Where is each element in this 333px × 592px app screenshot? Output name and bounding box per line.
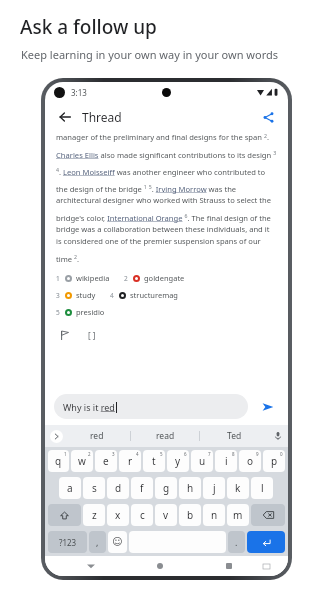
button[interactable]: z — [83, 504, 105, 526]
staticText: structuremag — [130, 290, 178, 300]
staticText: s — [92, 481, 97, 495]
button[interactable]: Home — [150, 556, 170, 576]
staticText: goldengate — [144, 273, 185, 283]
staticText: b — [187, 508, 194, 522]
staticText: 8 — [232, 451, 235, 457]
staticText: 2 — [88, 451, 91, 457]
staticText: t — [152, 454, 156, 468]
button[interactable]: 5 — [56, 307, 105, 317]
button[interactable]: n — [203, 504, 225, 526]
staticText: a — [67, 481, 73, 495]
button[interactable]: c — [131, 504, 153, 526]
staticText: 3 — [56, 291, 60, 300]
button[interactable]: More suggestions — [50, 430, 63, 443]
button[interactable]: q — [48, 450, 69, 472]
staticText: c — [140, 508, 145, 522]
staticText: 0 — [280, 451, 283, 457]
button[interactable]: red — [63, 425, 130, 447]
staticText: 5 — [160, 451, 163, 457]
staticText: f — [140, 481, 144, 495]
staticText: 4 — [110, 291, 114, 300]
staticText: i — [225, 454, 228, 468]
button[interactable]: Sources — [84, 327, 100, 343]
staticText: p — [271, 454, 278, 468]
staticText: Ask a follow up — [20, 14, 157, 40]
button[interactable]: ☺ — [108, 531, 127, 553]
staticText: 3 — [112, 451, 115, 457]
staticText: Why is it red — [63, 401, 115, 413]
button[interactable]: x — [107, 504, 129, 526]
button[interactable]: Back — [81, 556, 101, 576]
staticText: k — [235, 481, 241, 495]
button[interactable]: Comma — [89, 531, 106, 553]
staticText: g — [163, 481, 170, 495]
button[interactable]: Why is it red — [54, 394, 248, 419]
button[interactable]: u — [191, 450, 213, 472]
button[interactable]: Period — [228, 531, 245, 553]
staticText: 1 — [64, 451, 67, 457]
button[interactable]: k — [227, 477, 249, 499]
button[interactable]: d — [107, 477, 129, 499]
button[interactable]: s — [83, 477, 105, 499]
button[interactable]: Recents — [219, 556, 239, 576]
staticText: 2 — [124, 274, 128, 283]
button[interactable]: m — [227, 504, 249, 526]
staticText: n — [211, 508, 218, 522]
button[interactable]: 2 — [124, 273, 185, 283]
button[interactable]: p — [263, 450, 285, 472]
button[interactable]: ?123 — [48, 531, 87, 553]
button[interactable]: l — [251, 477, 273, 499]
staticText: study — [76, 290, 96, 300]
button[interactable]: 4 — [110, 290, 178, 300]
button[interactable]: h — [179, 477, 201, 499]
staticText: e — [103, 454, 109, 468]
button[interactable]: 1 — [56, 273, 110, 283]
staticText: 7 — [208, 451, 211, 457]
staticText: u — [199, 454, 206, 468]
button[interactable]: Back — [55, 107, 75, 127]
staticText: m — [233, 508, 243, 522]
button[interactable]: Send — [257, 396, 279, 418]
button[interactable]: v — [155, 504, 177, 526]
staticText: wikipedia — [76, 273, 110, 283]
button[interactable]: Enter — [247, 531, 285, 553]
button[interactable]: r — [119, 450, 141, 472]
button[interactable]: j — [203, 477, 225, 499]
button[interactable]: f — [131, 477, 153, 499]
button[interactable]: 3 — [56, 290, 96, 300]
staticText: v — [163, 508, 169, 522]
staticText: q — [55, 454, 62, 468]
button[interactable]: o — [239, 450, 261, 472]
button[interactable]: Voice input — [268, 425, 288, 447]
staticText: manager of the preliminary and final des… — [56, 132, 277, 264]
staticText: 1 — [56, 274, 60, 283]
staticText: read — [156, 430, 175, 442]
staticText: , — [96, 536, 99, 548]
staticText: h — [187, 481, 194, 495]
button[interactable]: b — [179, 504, 201, 526]
button[interactable]: i — [215, 450, 237, 472]
staticText: 3:13 — [71, 87, 87, 98]
staticText: r — [128, 454, 133, 468]
button[interactable]: Ted — [200, 425, 268, 447]
staticText: w — [78, 454, 86, 468]
button[interactable]: t — [143, 450, 165, 472]
button[interactable]: a — [59, 477, 81, 499]
staticText: Keep learning in your own way in your ow… — [21, 47, 279, 62]
staticText: y — [175, 454, 181, 468]
staticText: l — [261, 481, 264, 495]
button[interactable]: Keyboard switcher — [258, 558, 274, 574]
button[interactable]: Report — [56, 327, 72, 343]
staticText: 9 — [256, 451, 259, 457]
button[interactable]: e — [95, 450, 117, 472]
button[interactable]: w — [71, 450, 93, 472]
button[interactable]: read — [131, 425, 199, 447]
staticText: Ted — [227, 430, 242, 442]
button[interactable]: g — [155, 477, 177, 499]
button[interactable]: Share — [258, 107, 278, 127]
button[interactable]: Backspace — [251, 504, 285, 526]
button[interactable]: y — [167, 450, 189, 472]
button[interactable]: Shift — [48, 504, 81, 526]
staticText: Thread — [82, 109, 122, 125]
